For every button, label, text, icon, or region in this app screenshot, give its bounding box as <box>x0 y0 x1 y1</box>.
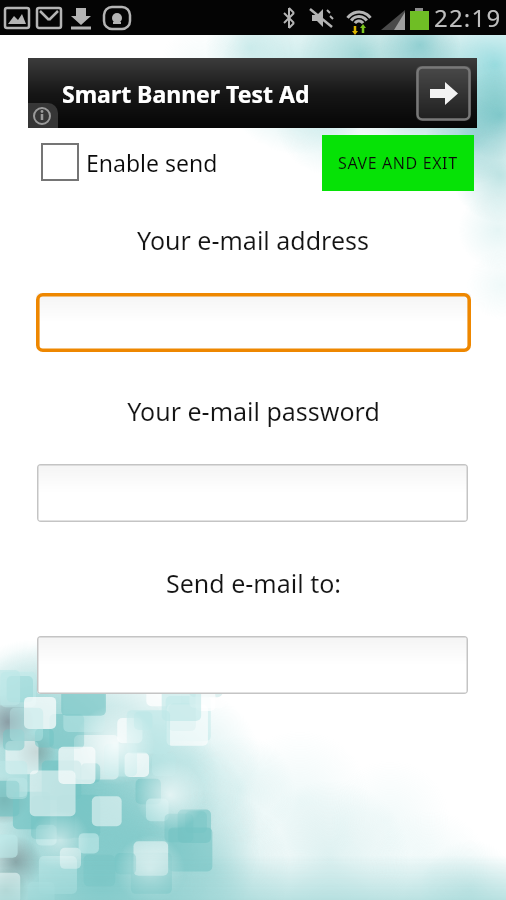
button[interactable] <box>28 103 58 128</box>
staticText: Your e-mail address <box>137 223 369 257</box>
staticText: Enable send <box>86 147 218 178</box>
button[interactable]: SAVE AND EXIT <box>322 135 474 191</box>
staticText: Send e-mail to: <box>166 566 341 600</box>
staticText: Smart Banner Test Ad <box>62 78 310 109</box>
button[interactable] <box>416 66 471 121</box>
staticText: Your e-mail password <box>127 394 380 428</box>
button[interactable]: Smart Banner Test Ad <box>28 58 477 128</box>
staticText: 22:19 <box>434 1 502 34</box>
button[interactable]: Enable send <box>41 143 261 182</box>
staticText: SAVE AND EXIT <box>338 152 458 174</box>
button[interactable] <box>37 636 468 694</box>
button[interactable] <box>36 293 471 352</box>
button[interactable] <box>37 464 468 522</box>
